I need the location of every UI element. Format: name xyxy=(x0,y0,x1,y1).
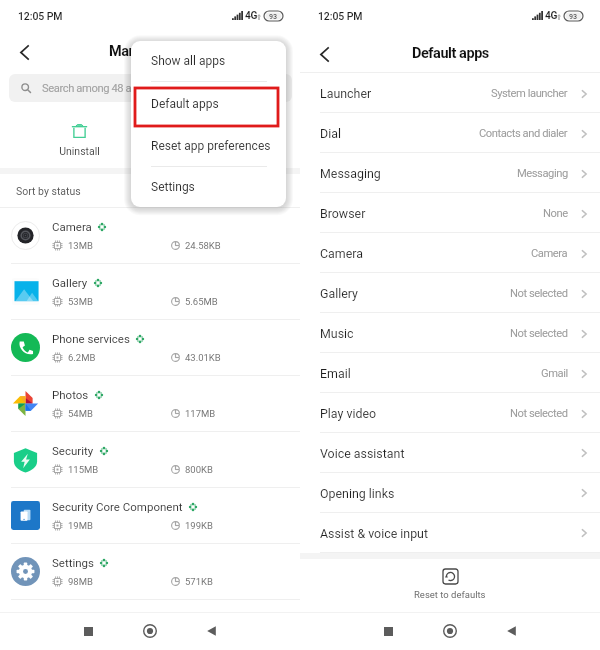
staticText: 800KB xyxy=(185,464,213,475)
staticText: 98MB xyxy=(68,576,93,587)
staticText: Play video xyxy=(320,406,377,421)
button[interactable]: Settings xyxy=(0,544,300,600)
button[interactable]: Uninstall xyxy=(51,119,107,161)
button[interactable]: Opening links xyxy=(300,473,600,513)
button[interactable]: Search among 48 apps xyxy=(9,74,292,102)
button[interactable]: Dial xyxy=(300,113,600,153)
button[interactable]: Reset to defaults xyxy=(410,565,490,604)
staticText: Music xyxy=(320,326,354,341)
staticText: Gallery xyxy=(320,286,358,301)
staticText: 199KB xyxy=(185,520,213,531)
staticText: 12:05 PM xyxy=(18,10,63,22)
staticText: 24.58KB xyxy=(185,240,221,251)
staticText: Camera xyxy=(52,220,92,233)
staticText: Messaging xyxy=(517,167,568,180)
staticText: Messaging xyxy=(320,166,381,181)
button[interactable]: Assist & voice input xyxy=(300,513,600,553)
staticText: 12:05 PM xyxy=(318,10,363,22)
staticText: 93 xyxy=(569,12,578,20)
staticText: Launcher xyxy=(320,86,372,101)
staticText: Settings xyxy=(52,556,94,569)
button[interactable]: Sort by status xyxy=(0,174,300,207)
staticText: Camera xyxy=(531,247,568,260)
staticText: Camera xyxy=(320,246,363,261)
staticText: Security Core Component xyxy=(52,500,183,513)
staticText: 115MB xyxy=(68,464,99,475)
button[interactable]: Messaging xyxy=(300,153,600,193)
button[interactable]: Photos xyxy=(0,376,300,432)
button[interactable]: Launcher xyxy=(300,73,600,113)
staticText: Sort by status xyxy=(16,185,81,197)
staticText: 571KB xyxy=(185,576,213,587)
staticText: Reset to defaults xyxy=(414,589,486,600)
button[interactable]: Gallery xyxy=(0,264,300,320)
button[interactable]: Back xyxy=(10,38,38,66)
staticText: 13MB xyxy=(68,240,93,251)
staticText: Contacts and dialer xyxy=(479,127,568,140)
staticText: 43.01KB xyxy=(185,352,221,363)
button[interactable]: Phone services xyxy=(0,320,300,376)
staticText: None xyxy=(543,207,568,220)
button[interactable]: Security xyxy=(0,432,300,488)
staticText: Reset app preferences xyxy=(151,139,271,153)
staticText: Search among 48 apps xyxy=(42,82,149,95)
button[interactable]: Default apps xyxy=(131,82,286,125)
staticText: Show all apps xyxy=(151,54,226,68)
staticText: 4G xyxy=(545,10,558,22)
button[interactable]: Settings xyxy=(131,167,286,207)
staticText: 93 xyxy=(269,12,278,20)
button[interactable]: Camera xyxy=(300,233,600,273)
staticText: Email xyxy=(320,366,351,381)
button[interactable]: Camera xyxy=(0,208,300,264)
staticText: Photos xyxy=(52,388,89,401)
staticText: Gallery xyxy=(52,276,88,289)
button[interactable]: Security Core Component xyxy=(0,488,300,544)
staticText: Default apps xyxy=(412,45,489,62)
staticText: Security xyxy=(52,444,94,457)
button[interactable]: Home xyxy=(132,614,168,648)
button[interactable]: Reset app preferences xyxy=(131,126,286,166)
staticText: 6.2MB xyxy=(68,352,96,363)
staticText: 54MB xyxy=(68,408,93,419)
staticText: Dial xyxy=(320,126,341,141)
button[interactable]: Gallery xyxy=(300,273,600,313)
staticText: Gmail xyxy=(541,367,568,380)
staticText: Not selected xyxy=(510,407,568,420)
button[interactable]: Recents xyxy=(370,614,406,648)
staticText: System launcher xyxy=(491,87,568,100)
staticText: 117MB xyxy=(185,408,216,419)
button[interactable]: Recents xyxy=(70,614,106,648)
staticText: 19MB xyxy=(68,520,93,531)
button[interactable]: Back xyxy=(193,614,229,648)
staticText: 5.65MB xyxy=(185,296,218,307)
staticText: Settings xyxy=(151,180,195,194)
staticText: Opening links xyxy=(320,486,395,501)
staticText: Not selected xyxy=(510,287,568,300)
button[interactable]: Show all apps xyxy=(131,41,286,81)
staticText: Phone services xyxy=(52,332,130,345)
button[interactable]: Back xyxy=(493,614,529,648)
button[interactable]: Home xyxy=(432,614,468,648)
button[interactable]: Voice assistant xyxy=(300,433,600,473)
staticText: Assist & voice input xyxy=(320,526,429,541)
staticText: 53MB xyxy=(68,296,93,307)
staticText: 4G xyxy=(245,10,258,22)
button[interactable]: Play video xyxy=(300,393,600,433)
staticText: Uninstall xyxy=(59,145,100,157)
staticText: Default apps xyxy=(151,97,219,111)
button[interactable]: Music xyxy=(300,313,600,353)
staticText: Browser xyxy=(320,206,366,221)
button[interactable]: Email xyxy=(300,353,600,393)
button[interactable]: Browser xyxy=(300,193,600,233)
staticText: Not selected xyxy=(510,327,568,340)
staticText: Voice assistant xyxy=(320,446,405,461)
staticText: Manage apps xyxy=(109,43,192,60)
button[interactable]: Back xyxy=(310,40,338,68)
